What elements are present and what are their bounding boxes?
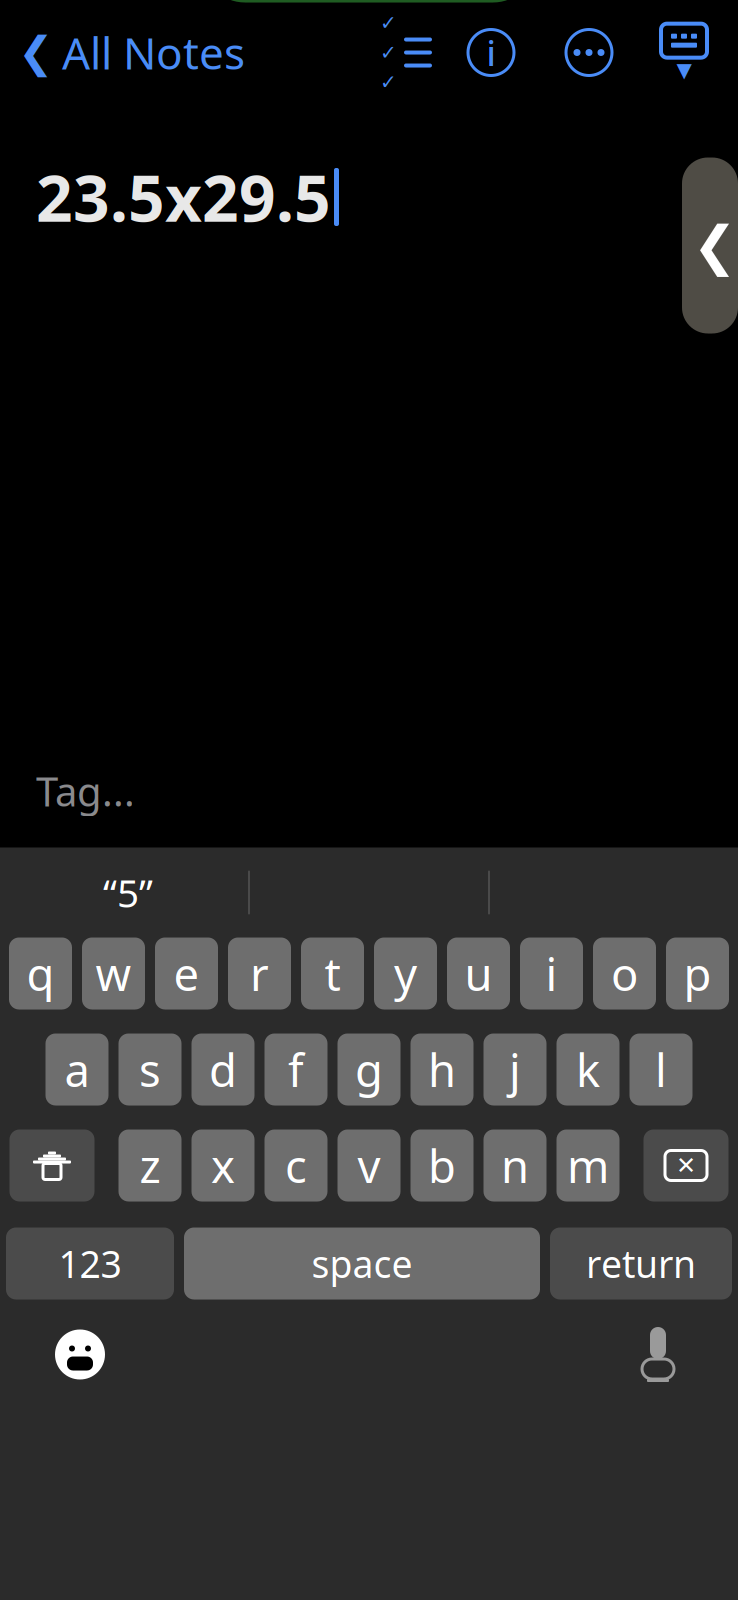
button[interactable]: Show side panel xyxy=(682,157,738,333)
button[interactable]: Format xyxy=(442,27,540,77)
button[interactable]: d xyxy=(191,1033,254,1105)
button[interactable]: r xyxy=(228,937,291,1009)
button[interactable]: v xyxy=(337,1129,400,1201)
button[interactable]: u xyxy=(447,937,510,1009)
button[interactable]: n xyxy=(483,1129,546,1201)
staticText: “5” xyxy=(103,867,153,918)
staticText: f xyxy=(288,1039,304,1100)
staticText: 123 xyxy=(58,1239,121,1288)
staticText: w xyxy=(95,943,131,1004)
button[interactable]: z xyxy=(118,1129,181,1201)
staticText: l xyxy=(655,1039,667,1100)
staticText: j xyxy=(509,1039,521,1100)
staticText: r xyxy=(250,943,269,1004)
button[interactable]: q xyxy=(9,937,72,1009)
staticText: x xyxy=(211,1135,235,1196)
button[interactable]: m xyxy=(556,1129,619,1201)
button[interactable]: l xyxy=(629,1033,692,1105)
staticText: n xyxy=(501,1135,529,1196)
button[interactable]: s xyxy=(118,1033,181,1105)
button[interactable]: return xyxy=(550,1227,732,1299)
button[interactable]: g xyxy=(337,1033,400,1105)
button[interactable]: b xyxy=(410,1129,473,1201)
button[interactable]: e xyxy=(155,937,218,1009)
button[interactable]: “5” xyxy=(8,860,248,924)
staticText: o xyxy=(611,943,638,1004)
button[interactable]: More xyxy=(540,27,638,77)
button[interactable]: h xyxy=(410,1033,473,1105)
staticText: a xyxy=(64,1039,89,1100)
staticText: y xyxy=(394,943,417,1004)
button[interactable]: Delete xyxy=(643,1129,728,1201)
staticText: ❮ xyxy=(18,28,54,77)
staticText: t xyxy=(324,943,340,1004)
staticText: All Notes xyxy=(62,23,245,82)
staticText: s xyxy=(139,1039,161,1100)
button[interactable]: ❮ xyxy=(0,15,245,90)
staticText: h xyxy=(428,1039,456,1100)
staticText: return xyxy=(586,1239,696,1288)
staticText: i xyxy=(486,29,495,75)
staticText: q xyxy=(26,943,54,1004)
button[interactable]: o xyxy=(593,937,656,1009)
staticText: ▼ xyxy=(676,59,691,81)
staticText: ✓ xyxy=(380,41,397,64)
staticText: v xyxy=(357,1135,380,1196)
staticText: p xyxy=(683,943,711,1004)
button[interactable]: p xyxy=(666,937,729,1009)
staticText: ✕ xyxy=(676,1152,696,1179)
button[interactable]: a xyxy=(45,1033,108,1105)
staticText: ❮ xyxy=(692,215,737,276)
button[interactable]: c xyxy=(264,1129,327,1201)
button[interactable]: y xyxy=(374,937,437,1009)
staticText: Tag... xyxy=(36,764,135,817)
button[interactable]: 123 xyxy=(6,1227,174,1299)
staticText: b xyxy=(428,1135,456,1196)
button[interactable]: Dictation xyxy=(620,1316,696,1392)
button[interactable]: space xyxy=(184,1227,540,1299)
staticText: g xyxy=(355,1039,383,1100)
staticText: space xyxy=(311,1239,412,1288)
button[interactable]: Checklist xyxy=(370,29,442,75)
staticText: e xyxy=(173,943,199,1004)
button[interactable]: i xyxy=(520,937,583,1009)
staticText: ✓ xyxy=(380,71,397,93)
button[interactable]: w xyxy=(82,937,145,1009)
staticText: ✓ xyxy=(380,11,397,34)
staticText: m xyxy=(567,1135,609,1196)
button[interactable]: Emoji xyxy=(42,1316,118,1392)
button[interactable]: Shift xyxy=(9,1129,94,1201)
staticText: 23.5x29.5 xyxy=(36,154,331,239)
staticText: d xyxy=(209,1039,237,1100)
staticText: i xyxy=(545,943,557,1004)
button[interactable]: f xyxy=(264,1033,327,1105)
staticText: c xyxy=(285,1135,307,1196)
staticText: k xyxy=(576,1039,600,1100)
button[interactable]: t xyxy=(301,937,364,1009)
button[interactable]: Hide Keyboard xyxy=(638,24,738,80)
staticText: u xyxy=(464,943,492,1004)
staticText: z xyxy=(139,1135,160,1196)
button[interactable]: x xyxy=(191,1129,254,1201)
button[interactable]: k xyxy=(556,1033,619,1105)
button[interactable]: j xyxy=(483,1033,546,1105)
